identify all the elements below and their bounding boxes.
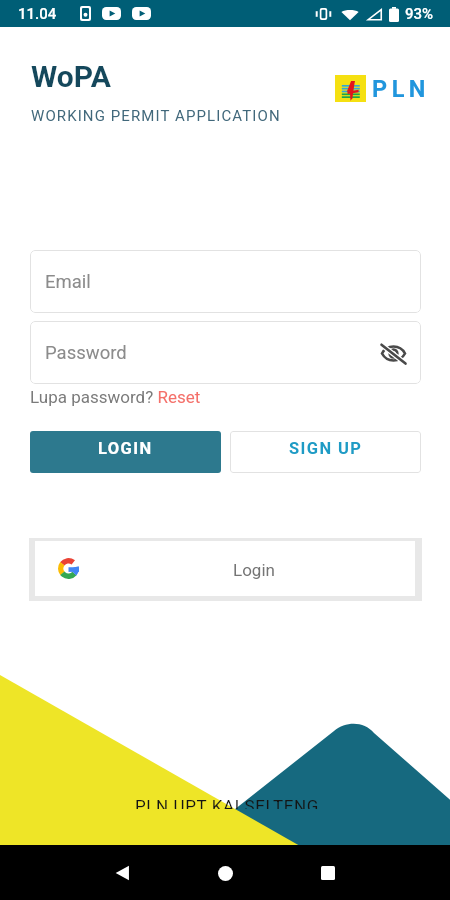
- button[interactable]: Toggle password visibility: [377, 337, 409, 369]
- staticText: Login: [233, 560, 275, 580]
- staticText: WORKING PERMIT APPLICATION: [31, 107, 281, 125]
- button[interactable]: Recents: [310, 855, 346, 891]
- button[interactable]: Email: [30, 250, 421, 313]
- staticText: SIGN UP: [289, 439, 363, 458]
- staticText: Password: [45, 342, 127, 364]
- staticText: Email: [45, 271, 91, 293]
- staticText: Lupa password? Reset: [30, 387, 201, 407]
- staticText: 11.04: [18, 5, 57, 23]
- staticText: PLN: [372, 75, 430, 103]
- button[interactable]: Password: [30, 321, 421, 384]
- button[interactable]: Home: [207, 855, 243, 891]
- button[interactable]: Back: [104, 855, 140, 891]
- staticText: PLN UPT KALSELTENG: [135, 797, 319, 809]
- staticText: WoPA: [31, 59, 111, 94]
- staticText: 93%: [405, 5, 434, 23]
- staticText: LOGIN: [98, 439, 153, 458]
- button[interactable]: SIGN UP: [230, 431, 421, 473]
- button[interactable]: LOGIN: [30, 431, 221, 473]
- button[interactable]: Login: [29, 538, 422, 601]
